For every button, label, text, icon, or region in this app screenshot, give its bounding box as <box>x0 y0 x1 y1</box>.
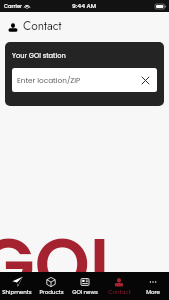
staticText: Enter location/ZIP <box>17 75 81 85</box>
staticText: Shipments <box>2 288 32 296</box>
button[interactable]: Contact <box>102 272 136 300</box>
staticText: Contact <box>108 288 131 296</box>
staticText: Contact <box>23 17 62 34</box>
button[interactable]: GOI news <box>68 272 102 300</box>
button[interactable]: Clear text <box>137 72 153 88</box>
button[interactable]: More <box>136 272 169 300</box>
staticText: 9:44 AM <box>72 2 97 10</box>
button[interactable]: Enter location/ZIP <box>12 68 157 92</box>
staticText: GOI <box>0 215 110 300</box>
staticText: Your GOI station <box>12 51 66 60</box>
staticText: GOI news <box>72 288 98 296</box>
staticText: More <box>146 288 160 296</box>
button[interactable]: Products <box>34 272 68 300</box>
staticText: Products <box>39 288 64 296</box>
staticText: Carrier <box>4 3 23 10</box>
button[interactable]: Shipments <box>0 272 34 300</box>
